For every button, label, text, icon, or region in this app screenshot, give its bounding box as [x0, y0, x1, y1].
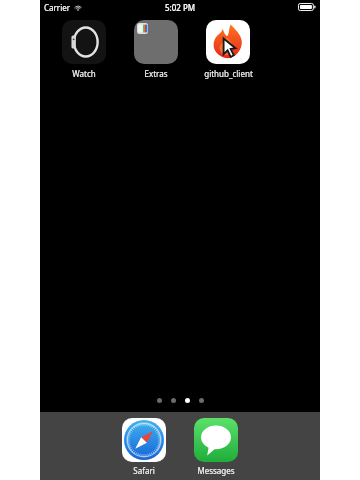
- staticText: github_client: [204, 68, 253, 79]
- staticText: Messages: [197, 465, 235, 476]
- staticText: Watch: [72, 68, 96, 79]
- button[interactable]: Safari: [113, 418, 175, 476]
- button[interactable]: Extras: [120, 18, 192, 81]
- button[interactable]: Watch: [48, 18, 120, 81]
- staticText: Safari: [133, 465, 155, 476]
- button[interactable]: github_client: [192, 18, 264, 81]
- staticText: Carrier: [44, 2, 71, 13]
- staticText: 5:02 PM: [165, 2, 196, 13]
- staticText: Extras: [144, 68, 168, 79]
- button[interactable]: Messages: [185, 418, 247, 476]
